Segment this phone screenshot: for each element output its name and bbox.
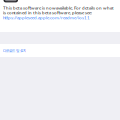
button[interactable]: 다운로드 및 설치 <box>0 44 120 57</box>
staticText: 다운로드 및 설치 <box>3 48 26 53</box>
staticText: This beta software is now available. For… <box>3 5 114 10</box>
staticText: is contained in this beta software, plea… <box>3 10 92 15</box>
staticText: https://appleseed.apple.com/readme/ios11 <box>3 15 90 20</box>
